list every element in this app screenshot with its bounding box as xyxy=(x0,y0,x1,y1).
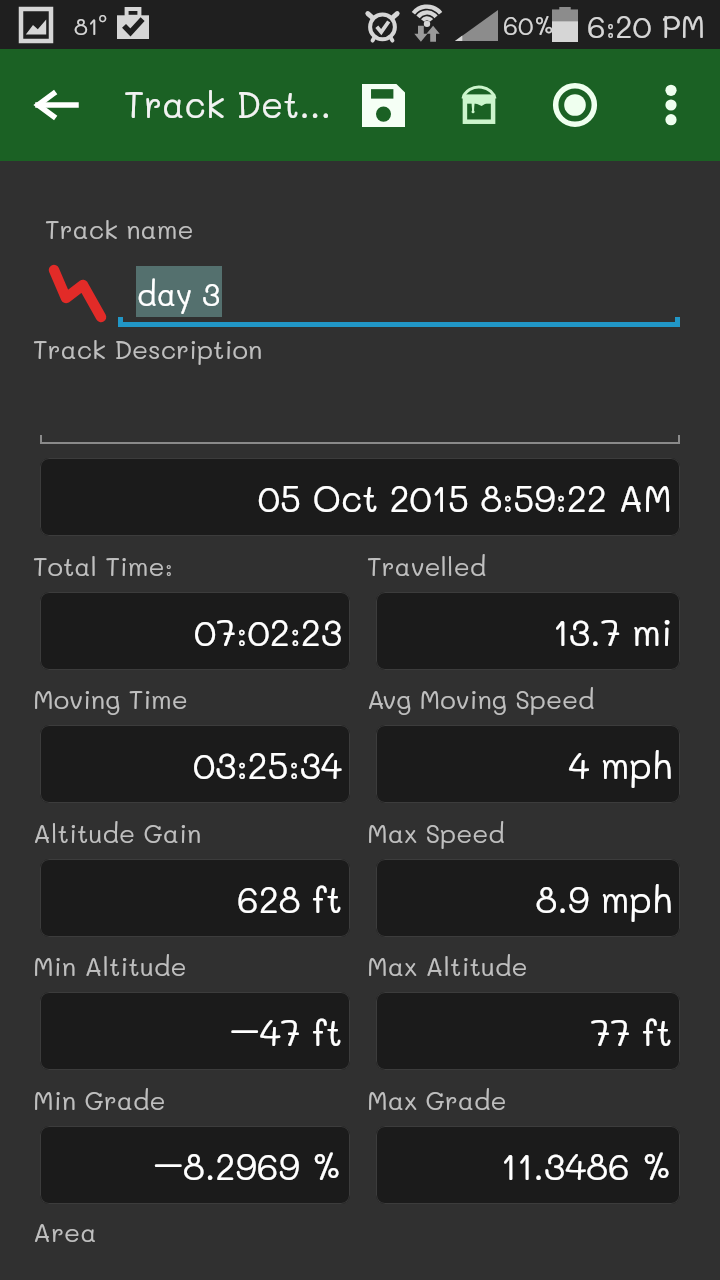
button[interactable]: 13.7 mi xyxy=(376,592,680,670)
staticText: 81° xyxy=(74,11,108,41)
staticText: Track name xyxy=(45,212,194,246)
button[interactable]: –8.2969 % xyxy=(40,1126,350,1204)
staticText: Travelled xyxy=(367,549,487,583)
button[interactable]: 628 ft xyxy=(40,859,350,937)
button[interactable]: Record xyxy=(540,70,610,140)
staticText: Max Altitude xyxy=(367,949,528,983)
button[interactable]: More options xyxy=(641,75,701,135)
staticText: Min Grade xyxy=(33,1083,166,1117)
staticText: 05 Oct 2015 8:59:22 AM xyxy=(257,474,672,521)
staticText: 13.7 mi xyxy=(552,608,672,655)
staticText: Total Time: xyxy=(33,549,173,583)
button[interactable]: Track colour xyxy=(444,70,514,140)
staticText: 6:20 PM xyxy=(587,5,706,45)
staticText: 60% xyxy=(503,9,555,41)
staticText: Track Description xyxy=(33,332,263,366)
staticText: 8.9 mph xyxy=(535,875,672,922)
staticText: 628 ft xyxy=(237,875,342,922)
staticText: Altitude Gain xyxy=(33,816,202,850)
staticText: Avg Moving Speed xyxy=(367,682,595,716)
staticText: Min Altitude xyxy=(33,949,187,983)
staticText: Moving Time xyxy=(33,682,188,716)
button[interactable]: Save xyxy=(348,70,418,140)
button[interactable]: –47 ft xyxy=(40,992,350,1070)
staticText: 11.3486 % xyxy=(501,1142,672,1189)
button[interactable]: 11.3486 % xyxy=(376,1126,680,1204)
button[interactable]: 8.9 mph xyxy=(376,859,680,937)
staticText: 03:25:34 xyxy=(193,741,342,788)
button[interactable]: Back xyxy=(22,70,92,140)
staticText: Max Speed xyxy=(367,816,505,850)
staticText: –8.2969 % xyxy=(153,1142,342,1189)
staticText: Track Det... xyxy=(124,80,332,127)
staticText: 77 ft xyxy=(590,1008,672,1055)
staticText: 4 mph xyxy=(568,741,672,788)
staticText: Max Grade xyxy=(367,1083,507,1117)
staticText: day 3 xyxy=(137,273,221,313)
button[interactable]: 07:02:23 xyxy=(40,592,350,670)
staticText: Area xyxy=(33,1215,97,1249)
button[interactable]: 05 Oct 2015 8:59:22 AM xyxy=(40,458,680,536)
button[interactable]: 4 mph xyxy=(376,725,680,803)
button[interactable]: 03:25:34 xyxy=(40,725,350,803)
staticText: –47 ft xyxy=(230,1008,342,1055)
button[interactable]: 77 ft xyxy=(376,992,680,1070)
staticText: 07:02:23 xyxy=(194,608,342,655)
